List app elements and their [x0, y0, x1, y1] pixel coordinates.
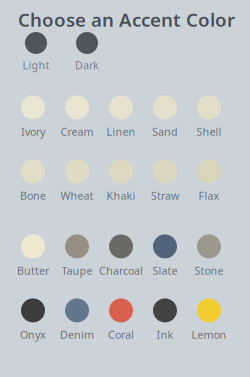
button[interactable]: Light: [14, 32, 58, 72]
staticText: Butter: [17, 263, 49, 278]
staticText: Denim: [60, 327, 94, 342]
staticText: Slate: [152, 263, 177, 278]
staticText: Taupe: [61, 263, 92, 278]
staticText: Choose an Accent Color: [18, 7, 235, 32]
staticText: Dark: [75, 58, 99, 72]
button[interactable]: Denim: [55, 298, 99, 342]
staticText: Ivory: [21, 124, 45, 139]
button[interactable]: Khaki: [99, 159, 143, 203]
staticText: Flax: [198, 188, 219, 203]
button[interactable]: Slate: [143, 234, 187, 278]
staticText: Ink: [156, 327, 173, 342]
staticText: Khaki: [106, 188, 135, 203]
button[interactable]: Dark: [65, 32, 109, 72]
button[interactable]: Bone: [11, 159, 55, 203]
staticText: Linen: [106, 124, 135, 139]
button[interactable]: Lemon: [187, 298, 231, 342]
button[interactable]: Stone: [187, 234, 231, 278]
staticText: Light: [22, 58, 49, 72]
staticText: Sand: [152, 124, 178, 139]
button[interactable]: Taupe: [55, 234, 99, 278]
button[interactable]: Straw: [143, 159, 187, 203]
staticText: Lemon: [191, 327, 226, 342]
button[interactable]: Flax: [187, 159, 231, 203]
staticText: Shell: [196, 124, 221, 139]
button[interactable]: Charcoal: [99, 234, 143, 278]
staticText: Coral: [108, 327, 134, 342]
button[interactable]: Sand: [143, 95, 187, 139]
button[interactable]: Butter: [11, 234, 55, 278]
button[interactable]: Wheat: [55, 159, 99, 203]
button[interactable]: Ink: [143, 298, 187, 342]
button[interactable]: Shell: [187, 95, 231, 139]
staticText: Wheat: [60, 188, 93, 203]
staticText: Stone: [194, 263, 223, 278]
staticText: Onyx: [20, 327, 46, 342]
staticText: Straw: [151, 188, 179, 203]
staticText: Cream: [60, 124, 93, 139]
button[interactable]: Linen: [99, 95, 143, 139]
staticText: Charcoal: [99, 263, 143, 278]
staticText: Bone: [20, 188, 46, 203]
button[interactable]: Coral: [99, 298, 143, 342]
button[interactable]: Cream: [55, 95, 99, 139]
button[interactable]: Onyx: [11, 298, 55, 342]
button[interactable]: Ivory: [11, 95, 55, 139]
